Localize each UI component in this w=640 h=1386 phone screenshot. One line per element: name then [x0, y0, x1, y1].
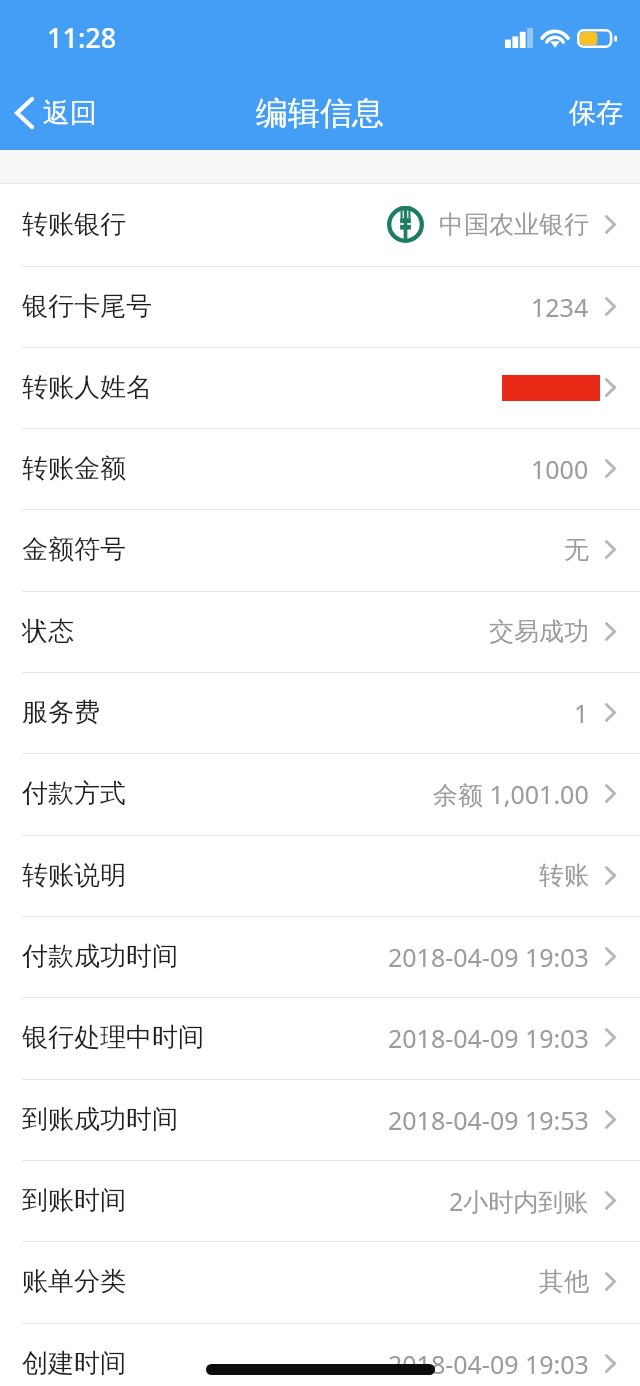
button[interactable]: 银行处理中时间	[0, 997, 640, 1078]
staticText: 转账说明	[22, 859, 126, 892]
button[interactable]: 账单分类	[0, 1241, 640, 1322]
staticText: 中国农业银行	[439, 209, 589, 240]
staticText: 无	[564, 534, 589, 565]
staticText: 11:28	[47, 19, 117, 56]
button[interactable]: 状态	[0, 591, 640, 672]
button[interactable]: 转账人姓名	[0, 347, 640, 428]
button[interactable]: 返回	[0, 84, 113, 142]
staticText: 1	[574, 696, 589, 730]
staticText: 转账人姓名	[22, 371, 152, 404]
staticText: 返回	[43, 96, 97, 130]
staticText: 2018-04-09 19:53	[388, 1103, 589, 1137]
staticText: 2小时内到账	[449, 1184, 589, 1218]
button[interactable]: 金额符号	[0, 509, 640, 590]
staticText: 状态	[22, 615, 74, 648]
button[interactable]: 服务费	[0, 672, 640, 753]
staticText: 2018-04-09 19:03	[388, 940, 589, 974]
button[interactable]: 转账金额	[0, 428, 640, 509]
staticText: 编辑信息	[256, 93, 384, 133]
staticText: 到账时间	[22, 1184, 126, 1217]
staticText: 转账	[539, 860, 589, 891]
staticText: 账单分类	[22, 1265, 126, 1298]
button[interactable]: 到账时间	[0, 1160, 640, 1241]
staticText: 金额符号	[22, 533, 126, 566]
button[interactable]: 转账说明	[0, 835, 640, 916]
button[interactable]: 付款成功时间	[0, 916, 640, 997]
button[interactable]: 付款方式	[0, 753, 640, 834]
staticText: 转账金额	[22, 452, 126, 485]
staticText: 2018-04-09 19:03	[388, 1347, 589, 1381]
staticText: 服务费	[22, 696, 100, 729]
button[interactable]: 到账成功时间	[0, 1079, 640, 1160]
staticText: 交易成功	[489, 616, 589, 647]
button[interactable]: 创建时间	[0, 1323, 640, 1386]
staticText: 转账银行	[22, 208, 126, 241]
staticText: 1234	[531, 290, 589, 324]
button[interactable]: 转账银行	[0, 184, 640, 265]
staticText: 银行卡尾号	[22, 290, 152, 323]
staticText: 到账成功时间	[22, 1103, 178, 1136]
button[interactable]: 保存	[547, 84, 640, 142]
staticText: 其他	[539, 1266, 589, 1297]
staticText: 付款方式	[22, 777, 126, 810]
staticText: 付款成功时间	[22, 940, 178, 973]
staticText: 创建时间	[22, 1347, 126, 1380]
button[interactable]: 银行卡尾号	[0, 266, 640, 347]
staticText: 银行处理中时间	[22, 1021, 204, 1054]
staticText: 1000	[531, 452, 589, 486]
staticText: 余额 1,001.00	[433, 777, 589, 811]
staticText: 2018-04-09 19:03	[388, 1021, 589, 1055]
